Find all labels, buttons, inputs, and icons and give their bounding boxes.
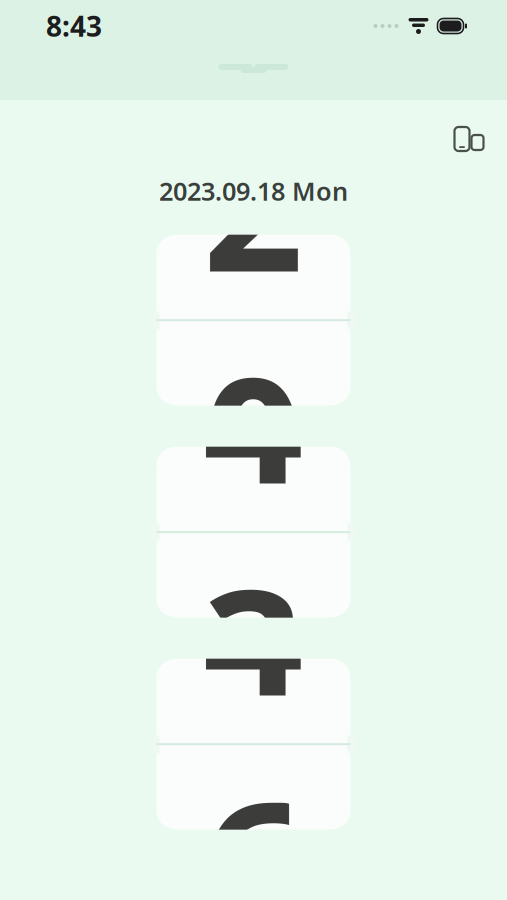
staticText: 20 — [203, 86, 304, 554]
button[interactable]: Screen mirroring — [444, 116, 494, 162]
staticText: 2023.09.18 Mon — [159, 174, 348, 208]
staticText: 46 — [203, 510, 304, 900]
staticText: 8:43 — [46, 7, 102, 45]
staticText: 43 — [203, 298, 304, 766]
